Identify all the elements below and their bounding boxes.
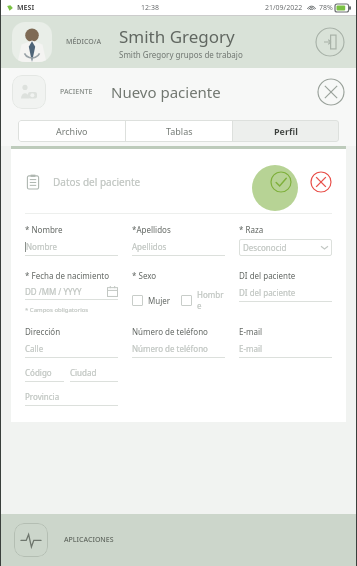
staticText: Apellidos <box>132 241 167 252</box>
staticText: MESI <box>17 3 35 13</box>
staticText: 12:38 <box>141 3 159 13</box>
button[interactable]: DD /MM / YYYY <box>25 286 118 297</box>
staticText: 78% <box>319 3 333 13</box>
button[interactable]: Calle <box>25 343 118 358</box>
staticText: Smith Gregory <box>119 25 235 48</box>
staticText: Ciudad <box>70 367 97 378</box>
staticText: *Apellidos <box>132 224 171 235</box>
button[interactable]: Ciudad <box>70 367 118 382</box>
staticText: * Raza <box>239 224 264 235</box>
staticText: Nuevo paciente <box>111 82 221 102</box>
staticText: Nombre <box>26 241 57 252</box>
staticText: Desconocid <box>243 242 287 253</box>
staticText: * Fecha de nacimiento <box>25 270 110 281</box>
staticText: Dirección <box>25 326 61 337</box>
staticText: MÉDICO/A <box>66 37 101 47</box>
button[interactable]: Desconocid <box>243 239 328 256</box>
staticText: Datos del paciente <box>53 175 141 189</box>
staticText: * Campos obligatorios <box>25 306 89 314</box>
staticText: Perfil <box>274 125 298 137</box>
staticText: Smith Gregory grupos de trabajo <box>119 49 243 60</box>
staticText: DD /MM / YYYY <box>25 286 82 297</box>
staticText: * Nombre <box>25 224 63 235</box>
staticText: E-mail <box>239 343 263 354</box>
staticText: E-mail <box>239 326 263 337</box>
staticText: Calle <box>25 343 44 354</box>
staticText: DI del paciente <box>239 287 296 298</box>
button[interactable]: Apellidos <box>132 241 225 252</box>
staticText: Archivo <box>56 125 88 137</box>
button[interactable]: Guardar <box>270 171 292 193</box>
button[interactable]: Archivo <box>18 120 125 142</box>
button[interactable]: Tablas <box>126 120 232 142</box>
button[interactable]: Número de teléfono <box>132 343 225 354</box>
staticText: DI del paciente <box>239 270 296 281</box>
staticText: 21/09/2022 <box>265 3 303 13</box>
button[interactable]: Nombre <box>25 241 118 252</box>
staticText: APLICACIONES <box>64 535 114 545</box>
button[interactable]: Cerrar <box>317 78 345 106</box>
staticText: * Sexo <box>132 270 157 281</box>
button[interactable]: Cerrar sesión <box>315 27 345 57</box>
button[interactable] <box>132 295 143 306</box>
button[interactable]: E-mail <box>239 343 332 354</box>
button[interactable]: Cancelar <box>310 171 332 193</box>
button[interactable]: Provincia <box>25 391 118 406</box>
button[interactable]: Perfil <box>233 120 339 142</box>
staticText: Código <box>25 367 52 378</box>
button[interactable]: Código <box>25 367 64 382</box>
staticText: Número de teléfono <box>132 343 208 354</box>
staticText: Hombre <box>197 289 225 311</box>
staticText: Número de teléfono <box>132 326 208 337</box>
staticText: Tablas <box>166 125 193 137</box>
staticText: PACIENTE <box>60 87 93 97</box>
staticText: Provincia <box>25 391 60 402</box>
button[interactable]: DI del paciente <box>239 287 332 298</box>
button[interactable] <box>181 295 192 306</box>
staticText: Mujer <box>148 295 171 306</box>
button[interactable]: Aplicaciones <box>14 523 48 557</box>
